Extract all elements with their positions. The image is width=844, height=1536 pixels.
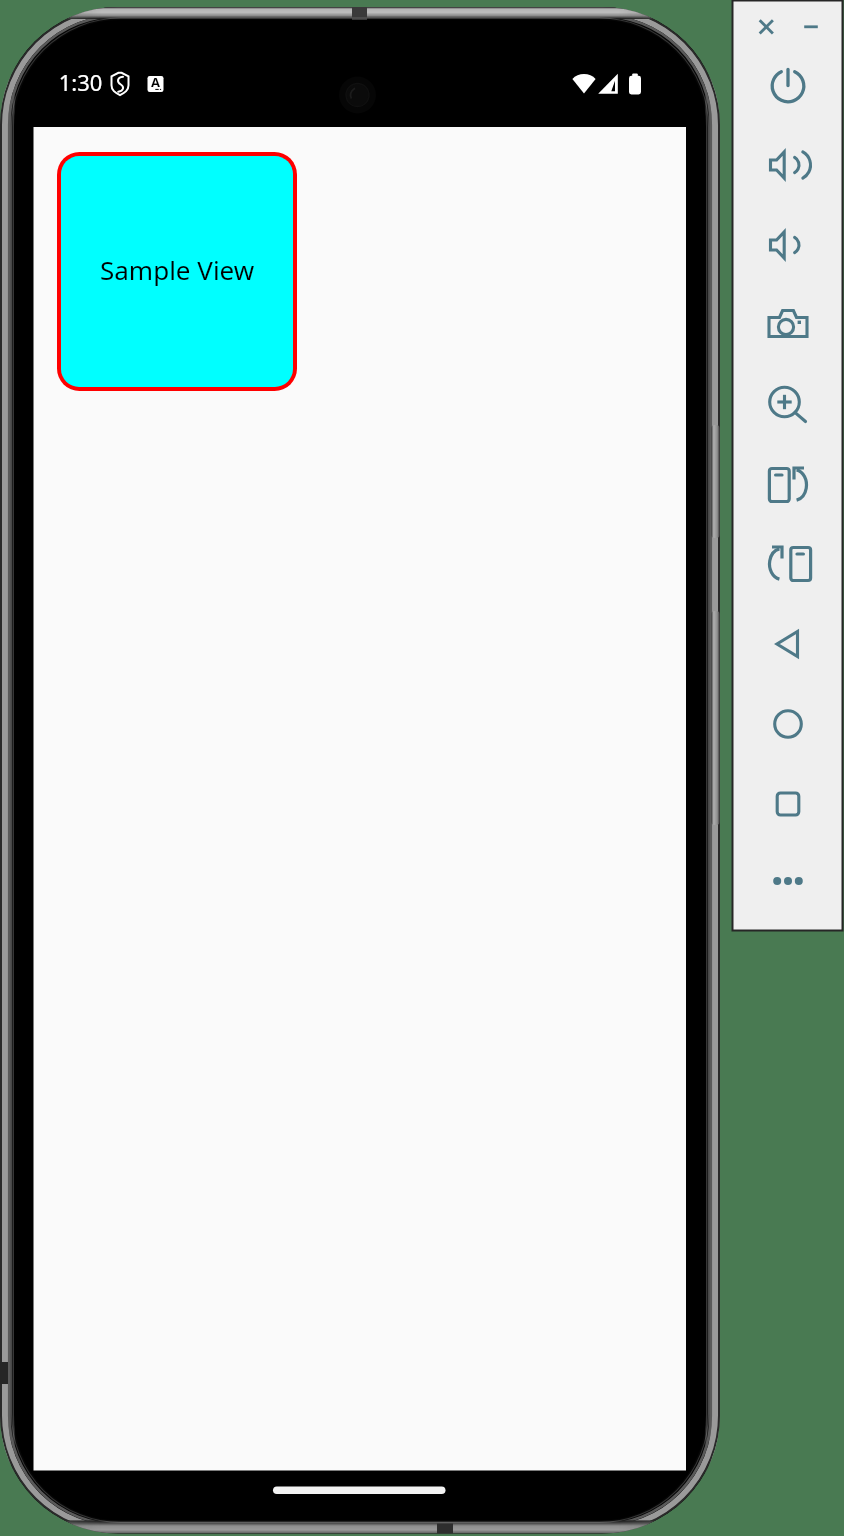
button[interactable]: Take screenshot bbox=[763, 300, 813, 350]
button[interactable]: Power bbox=[763, 61, 813, 111]
button[interactable]: Zoom bbox=[763, 380, 813, 430]
button[interactable]: Minimise bbox=[798, 12, 825, 42]
button[interactable]: Close bbox=[753, 12, 780, 42]
button[interactable]: Home bbox=[763, 699, 813, 749]
button[interactable]: More options bbox=[763, 856, 813, 906]
button[interactable]: Sample View bbox=[61, 156, 293, 387]
button[interactable]: Back bbox=[763, 619, 813, 669]
button[interactable]: Volume down bbox=[763, 220, 813, 270]
button[interactable]: Rotate right bbox=[763, 460, 813, 510]
staticText: Sample View bbox=[100, 252, 255, 287]
button[interactable]: Volume up bbox=[763, 140, 813, 190]
button[interactable]: Recent apps bbox=[763, 779, 813, 829]
button[interactable]: Rotate left bbox=[763, 539, 813, 589]
